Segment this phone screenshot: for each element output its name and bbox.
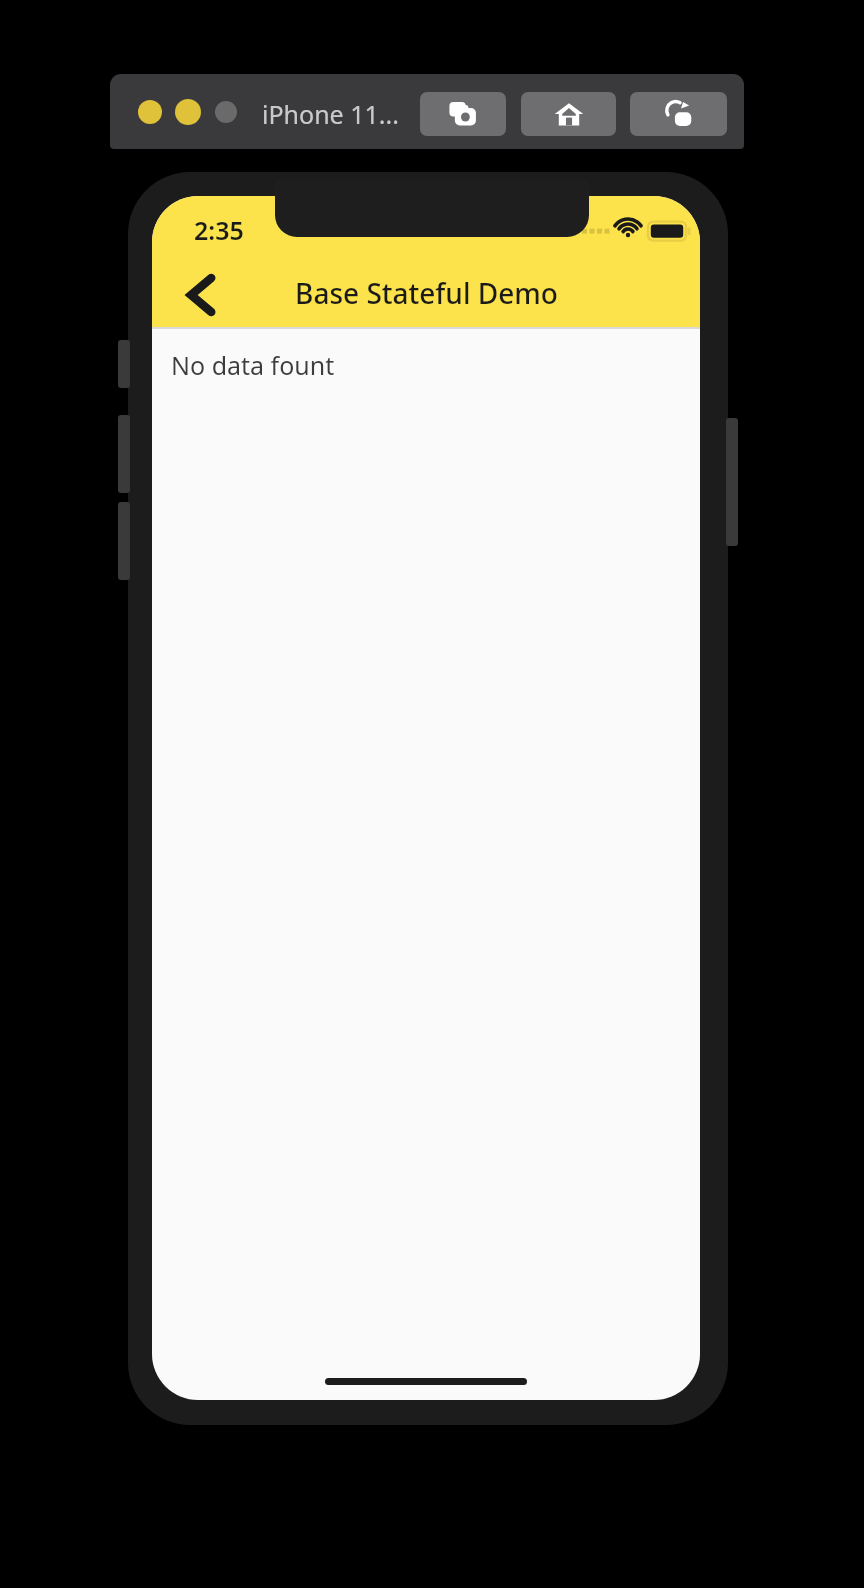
- button[interactable]: Back: [166, 266, 228, 324]
- staticText: 2:35: [194, 213, 244, 243]
- button[interactable]: Maximize: [215, 101, 237, 123]
- button[interactable]: Screenshot: [420, 92, 506, 136]
- staticText: Base Stateful Demo: [295, 274, 558, 312]
- button[interactable]: Volume down: [118, 502, 130, 580]
- button[interactable]: Volume up: [118, 415, 130, 493]
- button[interactable]: Minimize: [175, 99, 201, 125]
- button[interactable]: Rotate: [630, 92, 727, 136]
- button[interactable]: Silent switch: [118, 340, 130, 388]
- button[interactable]: Home: [521, 92, 616, 136]
- button[interactable]: Close: [138, 100, 162, 124]
- staticText: No data fount: [171, 348, 335, 382]
- staticText: iPhone 11...: [262, 97, 399, 131]
